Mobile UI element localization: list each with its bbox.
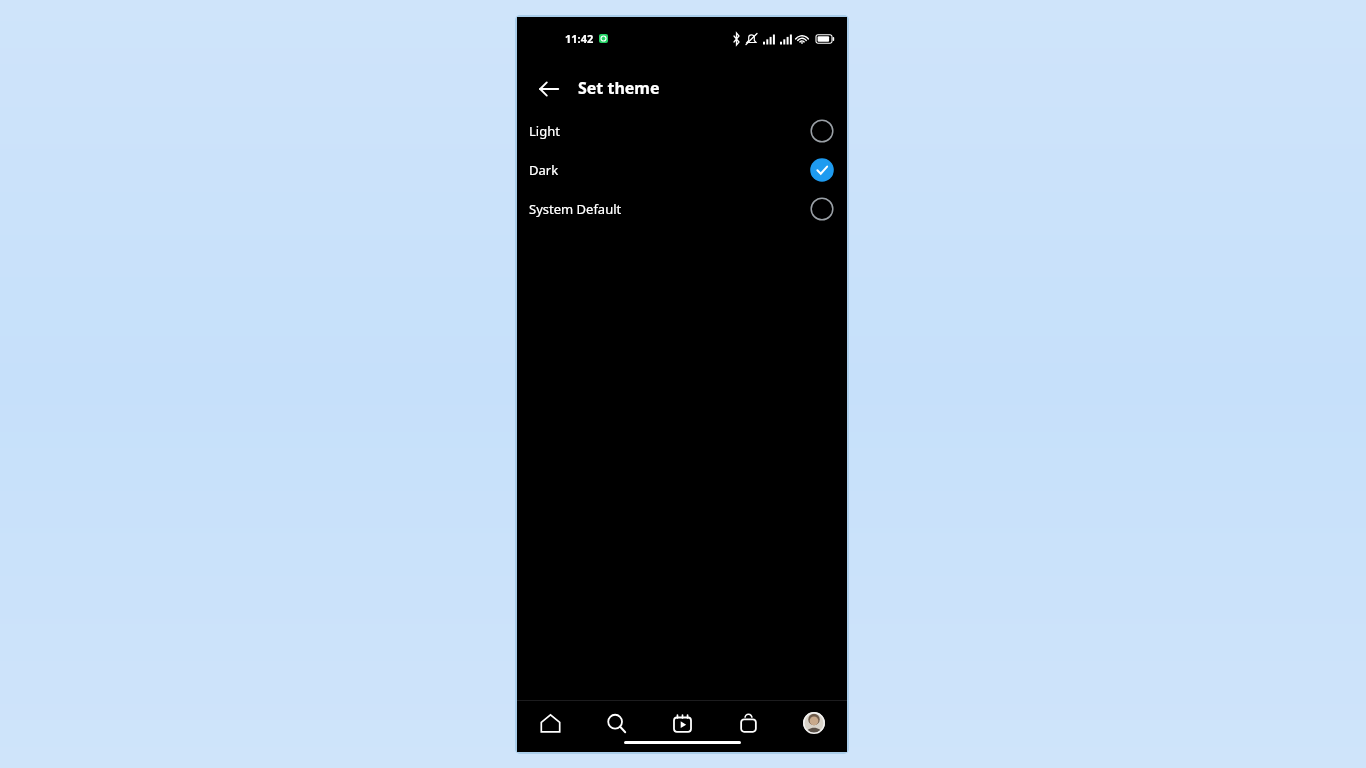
button[interactable]: Shop — [715, 701, 781, 745]
button[interactable]: Back — [527, 67, 571, 111]
staticText: System Default — [529, 200, 622, 218]
button[interactable]: Home — [517, 701, 583, 745]
button[interactable]: Search — [583, 701, 649, 745]
button[interactable]: Profile — [781, 701, 847, 745]
staticText: 11:42 — [565, 31, 594, 46]
staticText: Set theme — [578, 77, 660, 99]
button[interactable]: System Default — [517, 189, 847, 228]
staticText: Light — [529, 122, 560, 140]
button[interactable]: Light — [517, 111, 847, 150]
button[interactable]: Dark — [517, 150, 847, 189]
button[interactable]: Reels — [649, 701, 715, 745]
staticText: Dark — [529, 161, 559, 179]
